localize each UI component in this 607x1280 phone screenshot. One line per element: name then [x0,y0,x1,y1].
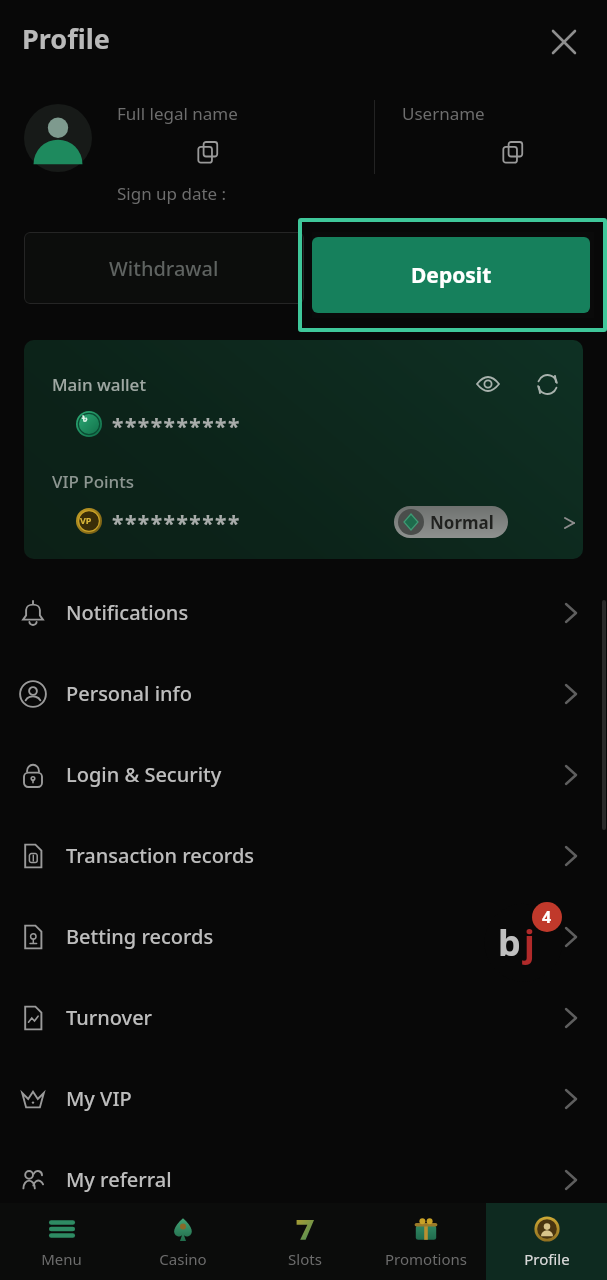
button[interactable]: Login & Security [0,734,607,815]
staticText: ********** [112,509,241,538]
button[interactable]: Promotions [365,1203,486,1280]
staticText: b [498,918,521,967]
button[interactable]: Copy [193,138,223,168]
button[interactable]: My VIP [0,1058,607,1139]
button[interactable]: Slots [244,1203,365,1280]
staticText: ********** [112,412,241,441]
button[interactable]: Notifications [0,572,607,653]
staticText: Turnover [66,1004,153,1031]
button[interactable]: Copy [498,138,528,168]
staticText: Personal info [66,680,192,707]
staticText: VP [80,514,92,526]
staticText: Sign up date : [117,182,227,205]
button[interactable]: Casino [122,1203,244,1280]
button[interactable]: BJ promotions [484,900,566,982]
button[interactable]: Menu [0,1203,122,1280]
button[interactable]: Withdrawal [24,232,304,304]
button[interactable]: Close [540,18,588,66]
staticText: Menu [41,1249,82,1269]
staticText: 4 [542,906,552,928]
button[interactable]: Turnover [0,977,607,1058]
button[interactable]: Normal [394,506,508,538]
staticText: My VIP [66,1085,132,1112]
button[interactable]: Refresh balance [527,364,567,404]
staticText: My referral [66,1166,172,1193]
button[interactable]: Personal info [0,653,607,734]
button[interactable]: Transaction records [0,815,607,896]
staticText: Main wallet [52,373,146,396]
staticText: Notifications [66,599,189,626]
staticText: Withdrawal [109,255,219,282]
staticText: Transaction records [66,842,255,869]
staticText: Promotions [385,1249,467,1269]
staticText: j [524,918,535,967]
staticText: Deposit [411,261,492,290]
staticText: Login & Security [66,761,222,788]
button[interactable]: Profile [486,1203,607,1280]
staticText: Slots [288,1249,322,1269]
staticText: Normal [430,511,494,534]
staticText: Profile [524,1249,570,1269]
staticText: VIP Points [52,470,135,493]
staticText: Full legal name [117,102,238,125]
staticText: ৳ [82,413,87,426]
button[interactable]: My referral [0,1139,607,1220]
button[interactable]: Deposit [312,237,590,313]
button[interactable]: Betting records [0,896,607,977]
staticText: Casino [159,1249,207,1269]
staticText: Profile [22,20,110,57]
button[interactable]: Toggle balance visibility [468,364,508,404]
staticText: Username [402,102,485,125]
staticText: Betting records [66,923,214,950]
